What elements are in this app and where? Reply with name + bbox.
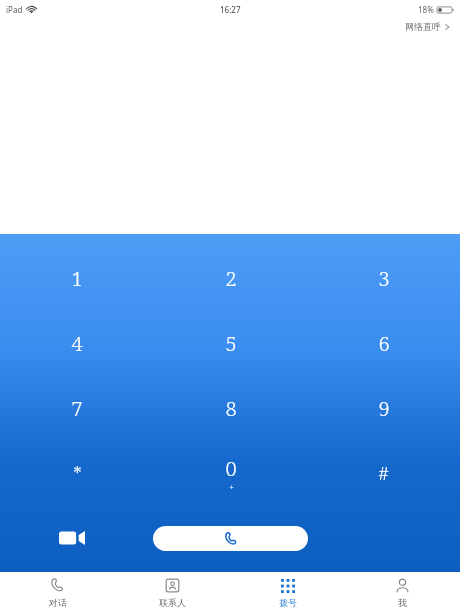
staticText: 8 (225, 395, 237, 422)
button[interactable]: 4 (0, 311, 154, 376)
staticText: 18% (418, 4, 434, 15)
staticText: 0 (225, 455, 237, 482)
staticText: 联系人 (159, 597, 186, 608)
staticText: 16:27 (220, 4, 241, 15)
staticText: * (73, 461, 82, 486)
staticText: 3 (378, 265, 390, 292)
button[interactable]: 8 (154, 376, 307, 441)
button[interactable]: 我 (345, 572, 460, 613)
button[interactable]: Call (153, 526, 308, 551)
staticText: 7 (71, 395, 83, 422)
button[interactable]: 网络直呼 (403, 20, 452, 33)
button[interactable]: # (307, 441, 460, 506)
button[interactable]: 5 (154, 311, 307, 376)
button[interactable]: 3 (307, 246, 460, 311)
staticText: 网络直呼 (405, 21, 441, 32)
button[interactable]: 拨号 (230, 572, 345, 613)
staticText: 我 (398, 597, 407, 608)
button[interactable]: 0 (154, 441, 307, 506)
button[interactable]: Video call (52, 518, 92, 558)
staticText: 9 (378, 395, 390, 422)
button[interactable]: 6 (307, 311, 460, 376)
staticText: 4 (71, 330, 83, 357)
button[interactable]: 2 (154, 246, 307, 311)
button[interactable]: * (0, 441, 154, 506)
button[interactable]: 联系人 (115, 572, 230, 613)
staticText: 2 (225, 265, 237, 292)
button[interactable]: 9 (307, 376, 460, 441)
button[interactable]: 对话 (0, 572, 115, 613)
staticText: 拨号 (279, 597, 297, 608)
button[interactable]: 1 (0, 246, 154, 311)
staticText: 5 (225, 330, 237, 357)
staticText: # (378, 461, 389, 486)
staticText: 对话 (49, 597, 67, 608)
staticText: iPad (6, 4, 23, 15)
staticText: 1 (71, 265, 83, 292)
button[interactable]: 7 (0, 376, 154, 441)
staticText: 6 (378, 330, 390, 357)
staticText: + (229, 483, 234, 493)
